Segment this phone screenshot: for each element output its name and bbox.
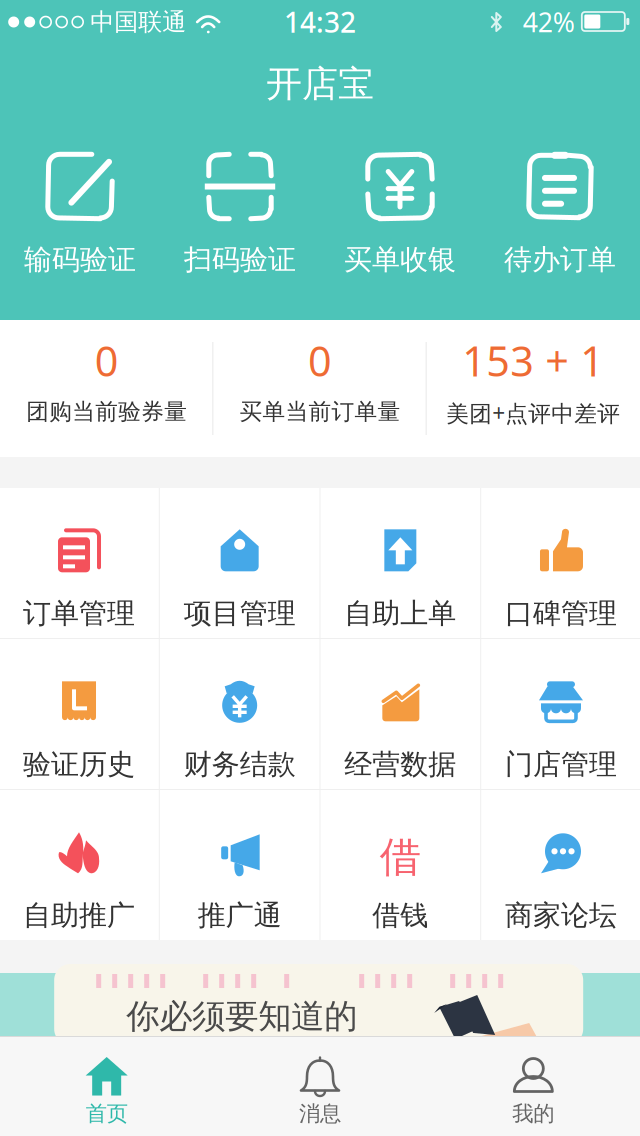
- staticText: 首页: [86, 1100, 128, 1127]
- staticText: 开店宝: [266, 62, 374, 106]
- staticText: 推广通: [198, 898, 282, 933]
- staticText: 扫码验证: [184, 242, 296, 277]
- staticText: 42%: [523, 4, 575, 40]
- button[interactable]: 我的: [427, 1036, 640, 1136]
- staticText: 借钱: [372, 898, 428, 933]
- staticText: 验证历史: [23, 747, 135, 782]
- staticText: 门店管理: [505, 747, 617, 782]
- staticText: 0: [308, 333, 332, 388]
- staticText: 商家论坛: [505, 898, 617, 933]
- staticText: 0: [95, 333, 119, 388]
- button[interactable]: 输码验证: [0, 112, 160, 280]
- button[interactable]: 经营数据: [320, 639, 480, 789]
- staticText: 美团+点评中差评: [446, 398, 620, 428]
- staticText: 买单收银: [344, 242, 456, 277]
- staticText: 输码验证: [24, 242, 136, 277]
- staticText: 14:32: [284, 3, 356, 41]
- button[interactable]: 买单收银: [320, 112, 480, 280]
- button[interactable]: 门店管理: [481, 639, 640, 789]
- staticText: 153 + 1: [462, 333, 604, 388]
- button[interactable]: 153 + 1: [427, 320, 640, 457]
- staticText: 团购当前验券量: [26, 398, 187, 426]
- button[interactable]: 验证历史: [0, 639, 159, 789]
- button[interactable]: 待办订单: [480, 112, 640, 280]
- staticText: 待办订单: [504, 242, 616, 277]
- button[interactable]: 你必须要知道的: [0, 973, 640, 1036]
- staticText: 消息: [299, 1100, 341, 1127]
- button[interactable]: 0: [0, 320, 213, 457]
- staticText: 你必须要知道的: [126, 996, 357, 1037]
- button[interactable]: 订单管理: [0, 488, 159, 638]
- staticText: 项目管理: [184, 596, 296, 631]
- staticText: 买单当前订单量: [239, 398, 400, 426]
- button[interactable]: 自助上单: [320, 488, 480, 638]
- button[interactable]: 自助推广: [0, 790, 159, 940]
- button[interactable]: 商家论坛: [481, 790, 640, 940]
- button[interactable]: 借: [320, 790, 480, 940]
- button[interactable]: 0: [213, 320, 427, 457]
- staticText: 自助推广: [23, 898, 135, 933]
- button[interactable]: 首页: [0, 1036, 213, 1136]
- staticText: 中国联通: [90, 7, 186, 37]
- staticText: 订单管理: [23, 596, 135, 631]
- staticText: 自助上单: [344, 596, 456, 631]
- button[interactable]: 扫码验证: [160, 112, 320, 280]
- button[interactable]: 项目管理: [160, 488, 319, 638]
- button[interactable]: 财务结款: [160, 639, 319, 789]
- button[interactable]: 口碑管理: [481, 488, 640, 638]
- staticText: 经营数据: [344, 747, 456, 782]
- staticText: 口碑管理: [505, 596, 617, 631]
- button[interactable]: 推广通: [160, 790, 319, 940]
- staticText: 借: [380, 832, 421, 883]
- button[interactable]: 消息: [213, 1036, 427, 1136]
- staticText: 财务结款: [184, 747, 296, 782]
- staticText: 我的: [512, 1100, 554, 1127]
